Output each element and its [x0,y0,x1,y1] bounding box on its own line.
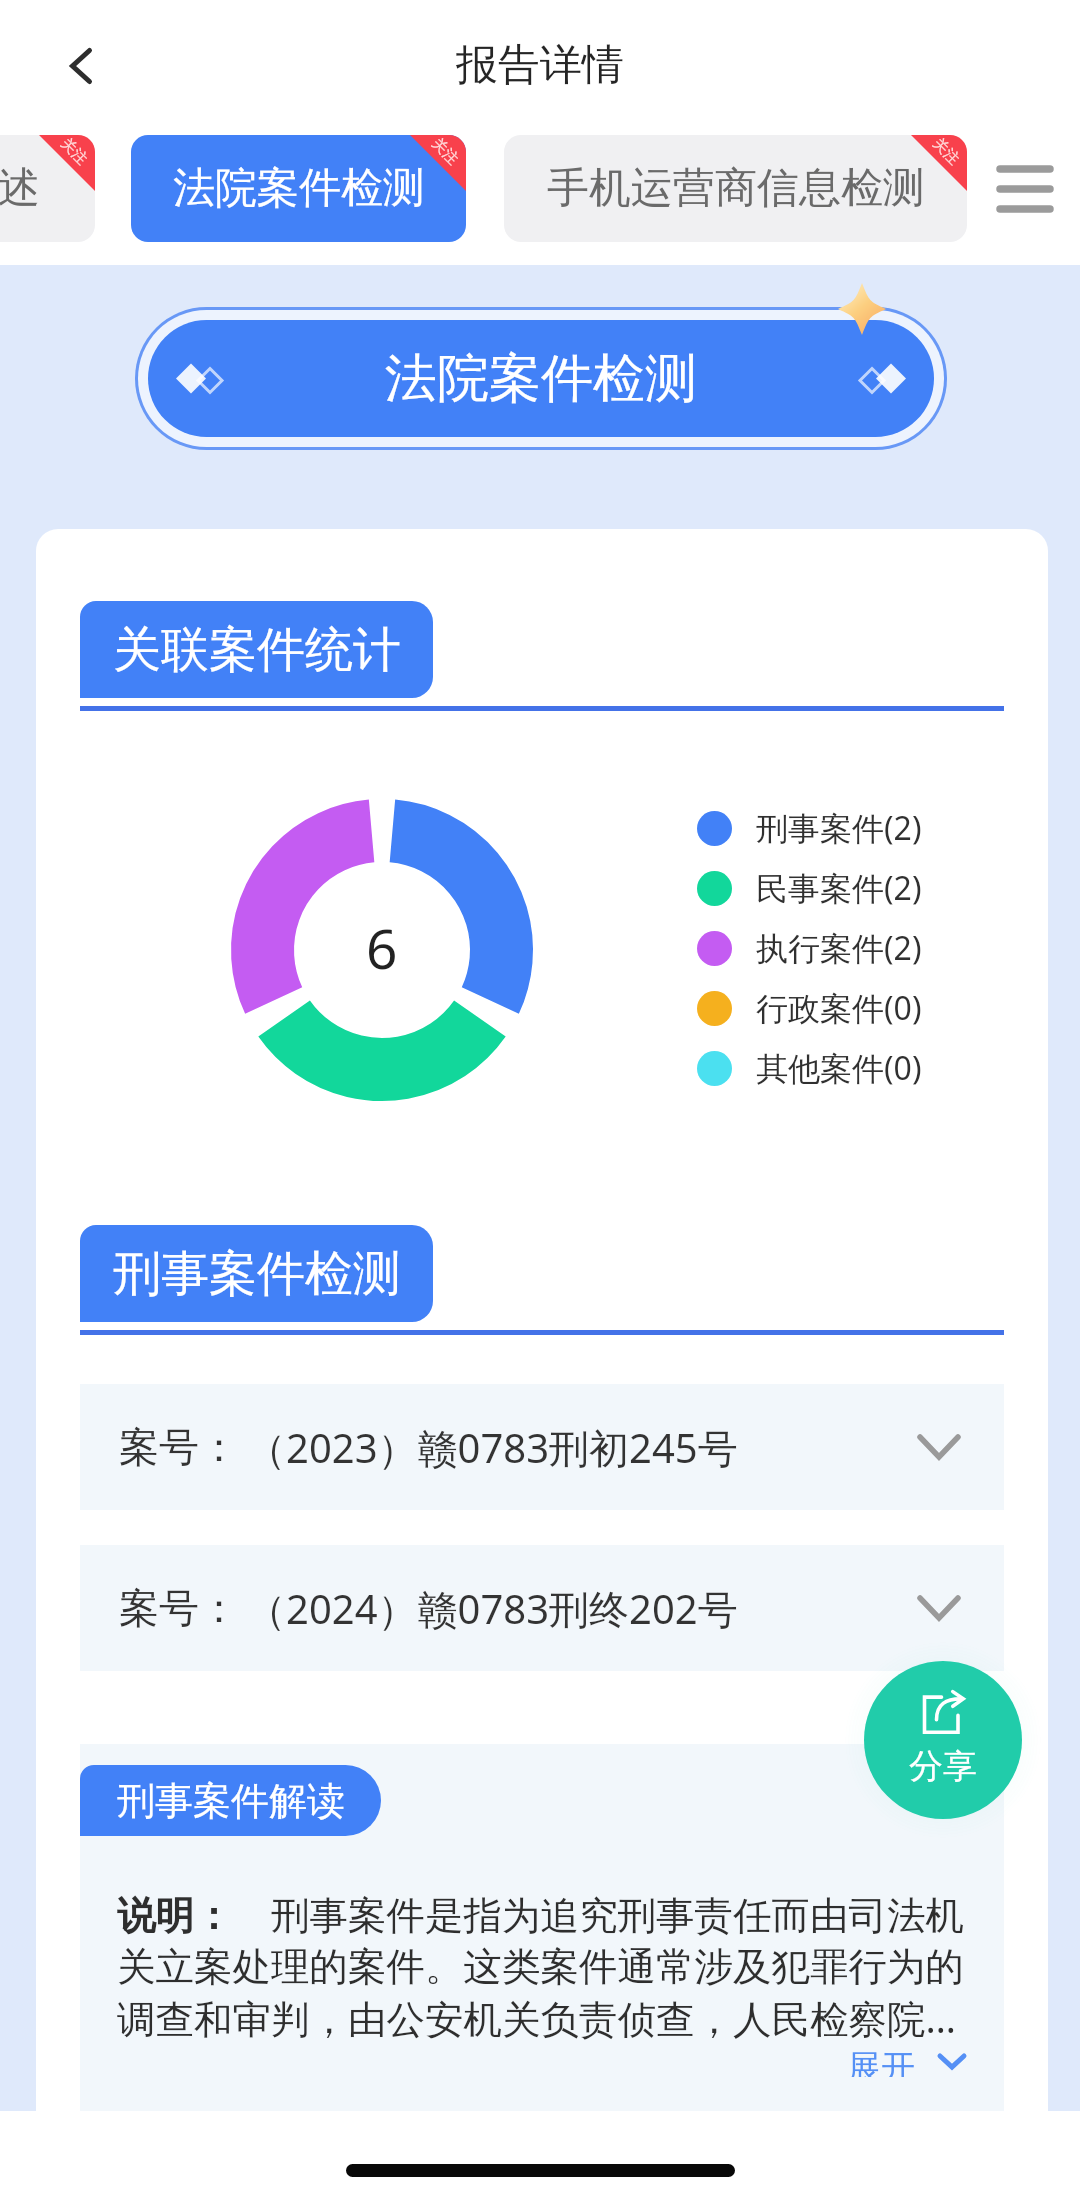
button[interactable]: 案号： [80,1384,1004,1510]
staticText: 执行案件(2) [756,926,922,970]
staticText: 其他案件(0) [756,1046,922,1090]
staticText: 关联案件统计 [113,620,401,680]
staticText: 分享 [909,1745,977,1788]
button[interactable]: 展开 [80,2046,967,2077]
button[interactable]: Menu [978,142,1072,236]
staticText: 展开 [847,2046,915,2077]
button[interactable]: 概述 [0,135,95,242]
staticText: 案号： [119,1583,239,1633]
staticText: （2024）赣0783刑终202号 [246,1581,738,1636]
staticText: 概述 [0,162,40,215]
staticText: 民事案件(2) [756,866,922,910]
staticText: 关注 [929,135,963,169]
staticText: 手机运营商信息检测 [547,162,925,215]
staticText: 行政案件(0) [756,986,922,1030]
staticText: 法院案件检测 [173,162,425,215]
button[interactable]: Share [864,1661,1022,1819]
staticText: 报告详情 [456,39,624,92]
button[interactable]: 案号： [80,1545,1004,1671]
staticText: 关注 [428,135,462,169]
staticText: 关注 [57,135,91,169]
staticText: 法院案件检测 [385,346,697,412]
staticText: 6 [366,910,398,985]
staticText: 说明： 刑事案件是指为追究刑事责任而由司法机关立案处理的案件。这类案件通常涉及犯… [117,1888,971,2044]
button[interactable]: 手机运营商信息检测 [504,135,967,242]
button[interactable]: 法院案件检测 [148,320,934,437]
button[interactable]: Back [38,23,124,109]
staticText: 刑事案件(2) [756,806,922,850]
staticText: 案号： [119,1422,239,1472]
staticText: （2023）赣0783刑初245号 [246,1420,738,1475]
staticText: 刑事案件解读 [117,1777,345,1825]
button[interactable]: 法院案件检测 [131,135,466,242]
staticText: 刑事案件检测 [113,1244,401,1304]
